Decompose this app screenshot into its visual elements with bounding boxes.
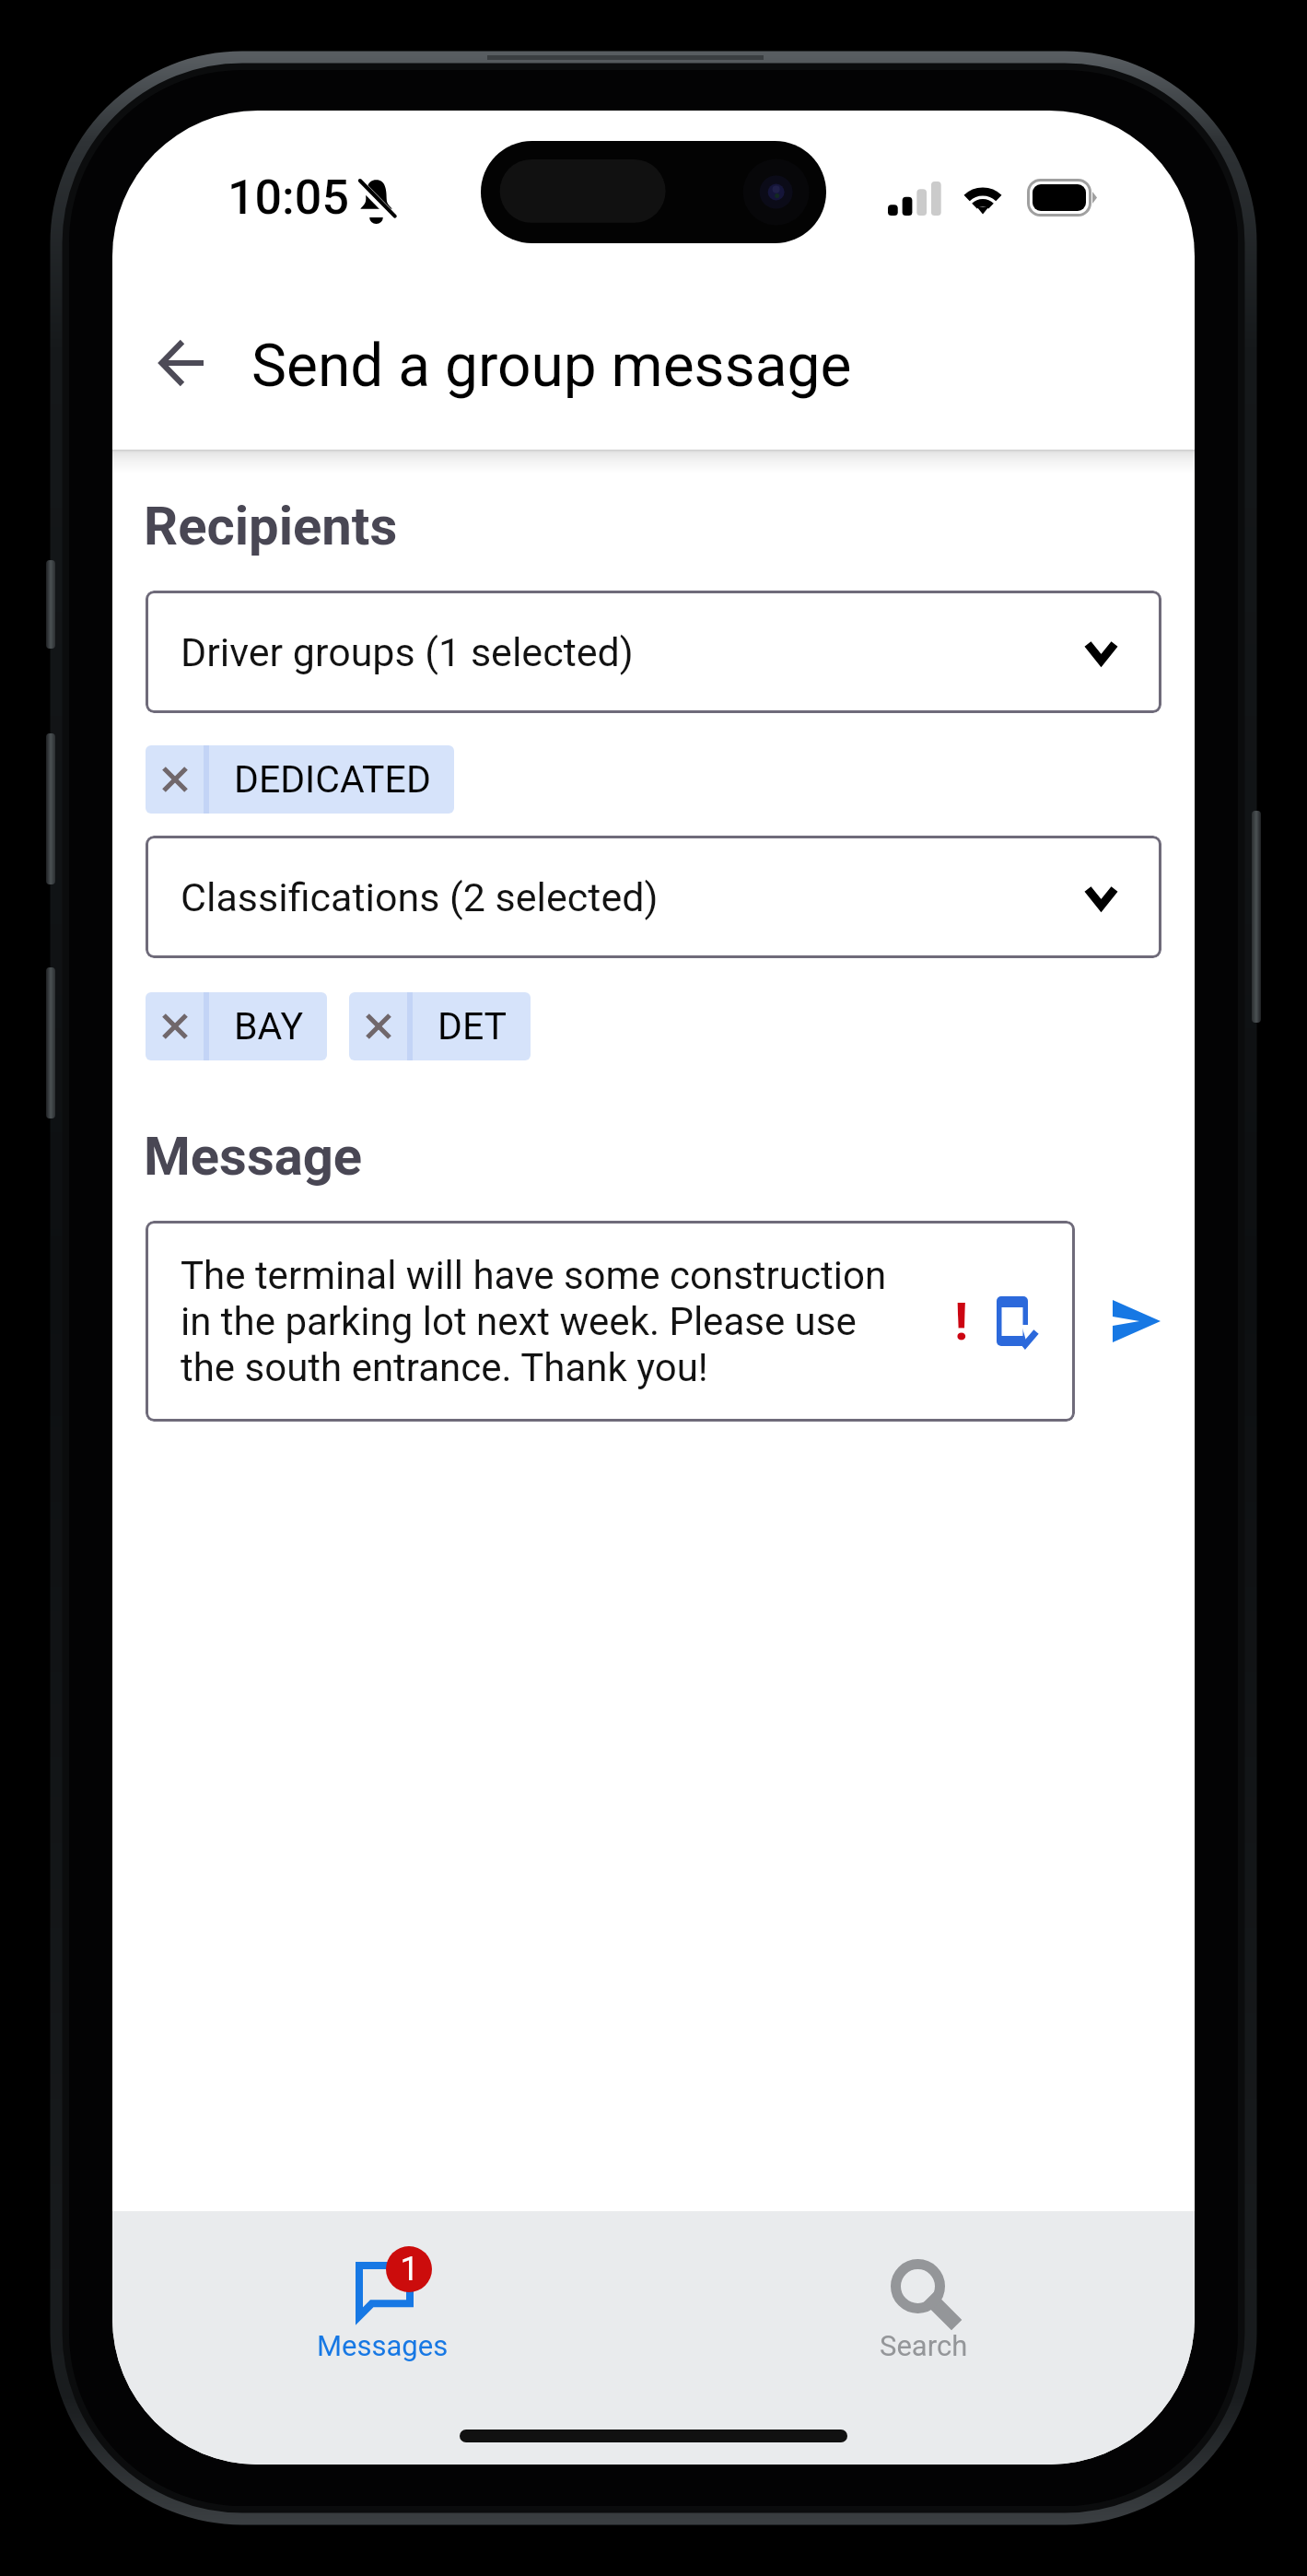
staticText: Classifications (2 selected) <box>181 874 659 920</box>
button[interactable]: Back <box>134 315 229 411</box>
button[interactable]: DEDICATED <box>209 745 454 814</box>
button[interactable]: Send <box>1089 1279 1184 1364</box>
staticText: BAY <box>234 1004 304 1048</box>
staticText: DEDICATED <box>234 757 431 802</box>
staticText: The terminal will have some construction… <box>181 1253 908 1390</box>
staticText: Search <box>880 2329 968 2362</box>
staticText: Send a group message <box>251 332 852 401</box>
staticText: 1 <box>400 2250 419 2289</box>
button[interactable]: DET <box>413 992 531 1060</box>
staticText: DET <box>438 1004 508 1048</box>
button[interactable]: Search <box>653 2211 1195 2465</box>
button[interactable]: Driver groups (1 selected) <box>146 591 1161 713</box>
button[interactable]: Remove DET <box>349 992 407 1060</box>
button[interactable]: Remove BAY <box>146 992 204 1060</box>
button[interactable]: BAY <box>209 992 327 1060</box>
staticText: Driver groups (1 selected) <box>181 629 634 675</box>
button[interactable]: Remove DEDICATED <box>146 745 204 814</box>
button[interactable]: 1 <box>112 2211 653 2465</box>
button[interactable]: Classifications (2 selected) <box>146 836 1161 958</box>
staticText: Message <box>144 1125 363 1188</box>
staticText: 10:05 <box>228 170 349 226</box>
staticText: ! <box>954 1292 969 1352</box>
button[interactable]: The terminal will have some construction… <box>146 1221 1075 1422</box>
staticText: Messages <box>317 2329 449 2362</box>
staticText: Recipients <box>144 495 398 557</box>
